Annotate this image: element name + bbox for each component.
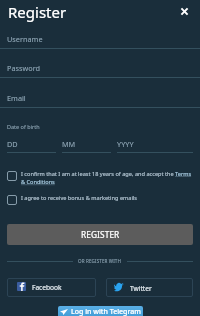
staticText: OR REGISTER WITH — [78, 258, 122, 264]
button[interactable]: DD — [7, 138, 56, 154]
button[interactable]: Facebook — [7, 278, 96, 297]
button[interactable]: Close — [177, 4, 192, 19]
button[interactable]: Password — [0, 57, 200, 79]
staticText: Log in with Telegram — [71, 307, 141, 316]
staticText: Twitter — [130, 284, 152, 293]
button[interactable]: I confirm that I am at least 18 years of… — [7, 170, 193, 190]
staticText: DD — [7, 139, 18, 149]
staticText: I confirm that I am at least 18 years of… — [21, 170, 193, 186]
staticText: MM — [62, 139, 76, 149]
button[interactable]: Twitter — [106, 278, 193, 297]
staticText: Username — [7, 34, 43, 44]
button[interactable]: I agree to receive bonus & marketing ema… — [7, 194, 193, 214]
button[interactable]: Log in with Telegram — [58, 306, 143, 316]
staticText: Password — [7, 63, 41, 73]
staticText: I agree to receive bonus & marketing ema… — [21, 194, 137, 202]
staticText: YYYY — [117, 139, 134, 149]
button[interactable]: YYYY — [117, 138, 193, 154]
button[interactable]: Username — [0, 28, 200, 50]
staticText: Facebook — [32, 283, 62, 292]
staticText: Email — [7, 93, 26, 103]
staticText: REGISTER — [81, 229, 120, 240]
staticText: Register — [8, 2, 67, 22]
button[interactable]: REGISTER — [7, 224, 193, 245]
staticText: Date of birth — [7, 123, 40, 130]
button[interactable]: MM — [62, 138, 111, 154]
button[interactable]: Email — [0, 87, 200, 109]
